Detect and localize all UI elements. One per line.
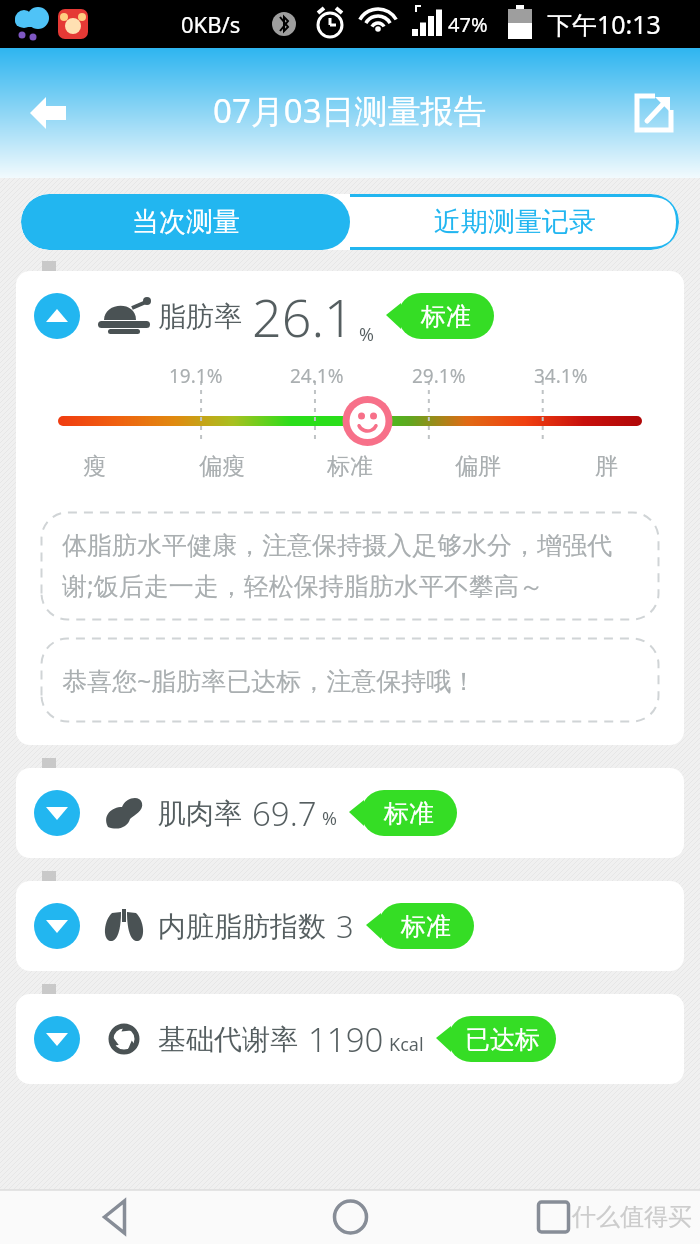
staticText: 下午10:13	[547, 7, 661, 41]
button[interactable]: Expand	[34, 790, 80, 836]
button[interactable]: Collapse	[16, 271, 684, 745]
button[interactable]: Home	[234, 1190, 467, 1244]
staticText: 47%	[448, 11, 488, 38]
staticText: 内脏脂肪指数	[158, 909, 326, 944]
button[interactable]: Expand	[34, 1016, 80, 1062]
staticText: 基础代谢率	[158, 1022, 298, 1057]
staticText: %	[322, 806, 337, 831]
staticText: 瘦	[83, 452, 106, 481]
staticText: 偏瘦	[199, 452, 245, 481]
button[interactable]: Back	[14, 79, 82, 147]
staticText: 标准	[401, 911, 451, 942]
staticText: 近期测量记录	[434, 205, 596, 239]
staticText: 29.1%	[412, 363, 466, 389]
staticText: 当次测量	[132, 205, 240, 239]
button[interactable]: Expand	[16, 768, 684, 858]
staticText: 标准	[421, 301, 471, 332]
staticText: Kcal	[389, 1032, 424, 1057]
staticText: 恭喜您~脂肪率已达标，注意保持哦！	[62, 663, 477, 697]
button[interactable]: Expand	[16, 881, 684, 971]
staticText: 34.1%	[534, 363, 588, 389]
button[interactable]: Expand	[34, 903, 80, 949]
staticText: %	[359, 322, 374, 347]
staticText: 偏胖	[455, 452, 501, 481]
staticText: 07月03日测量报告	[213, 88, 487, 133]
staticText: 69.7	[252, 791, 317, 836]
staticText: 0KB/s	[181, 9, 241, 39]
staticText: 19.1%	[169, 363, 223, 389]
staticText: 脂肪率	[158, 299, 242, 334]
staticText: 什么值得买	[572, 1202, 692, 1232]
staticText: 胖	[595, 452, 618, 481]
staticText: 1190	[308, 1017, 384, 1062]
staticText: 标准	[327, 452, 373, 481]
button[interactable]: Recents	[467, 1190, 700, 1244]
staticText: 已达标	[465, 1024, 540, 1055]
button[interactable]: Collapse	[34, 293, 80, 339]
button[interactable]: Back	[0, 1190, 233, 1244]
staticText: 肌肉率	[158, 796, 242, 831]
button[interactable]: Share	[622, 81, 686, 145]
staticText: 26.1	[252, 281, 354, 352]
staticText: 标准	[384, 798, 434, 829]
button[interactable]: Expand	[16, 994, 684, 1084]
button[interactable]: 近期测量记录	[350, 194, 679, 250]
staticText: 体脂肪水平健康，注意保持摄入足够水分，增强代谢;饭后走一走，轻松保持脂肪水平不攀…	[62, 530, 638, 603]
staticText: 3	[336, 905, 354, 947]
staticText: 24.1%	[290, 363, 344, 389]
button[interactable]: 当次测量	[21, 194, 350, 250]
